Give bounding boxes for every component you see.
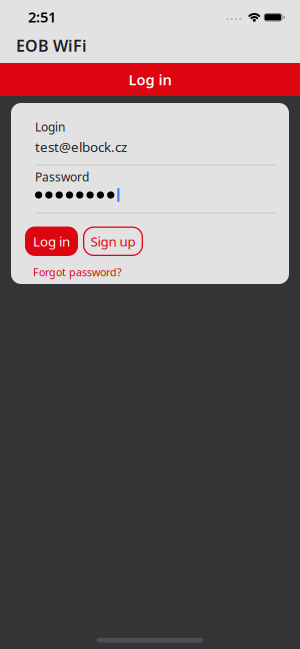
staticText: 2:51	[28, 7, 56, 26]
staticText: Log in	[128, 70, 171, 89]
button[interactable]: Forgot password?	[33, 265, 122, 279]
staticText: Password	[35, 169, 89, 185]
staticText: test@elbock.cz	[35, 138, 127, 156]
staticText: Forgot password?	[33, 265, 122, 279]
staticText: Log in	[33, 232, 70, 250]
button[interactable]: Login text field	[35, 138, 288, 166]
button[interactable]: Sign up	[83, 226, 143, 256]
button[interactable]: Password text field	[35, 188, 288, 214]
staticText: Sign up	[90, 232, 135, 250]
button[interactable]: Log in	[25, 226, 78, 256]
button[interactable]: Log in	[0, 63, 300, 96]
staticText: EOB WiFi	[16, 35, 87, 56]
staticText: Login	[35, 119, 65, 135]
